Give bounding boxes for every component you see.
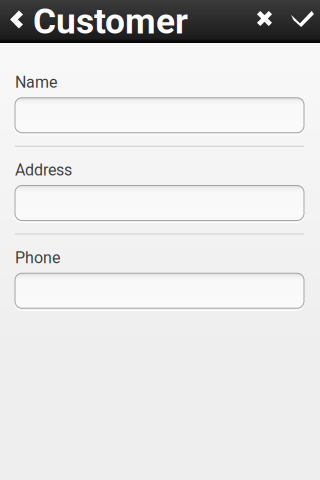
staticText: Name xyxy=(15,73,57,92)
staticText: Customer xyxy=(33,1,188,42)
staticText: Phone xyxy=(15,248,60,267)
button[interactable]: Phone field xyxy=(0,267,304,310)
staticText: Address xyxy=(15,161,72,180)
button[interactable]: Save xyxy=(291,0,320,43)
button[interactable]: Address field xyxy=(0,179,304,222)
button[interactable]: Name field xyxy=(0,92,304,135)
button[interactable]: Cancel xyxy=(246,0,291,43)
button[interactable]: Customer xyxy=(0,0,188,43)
